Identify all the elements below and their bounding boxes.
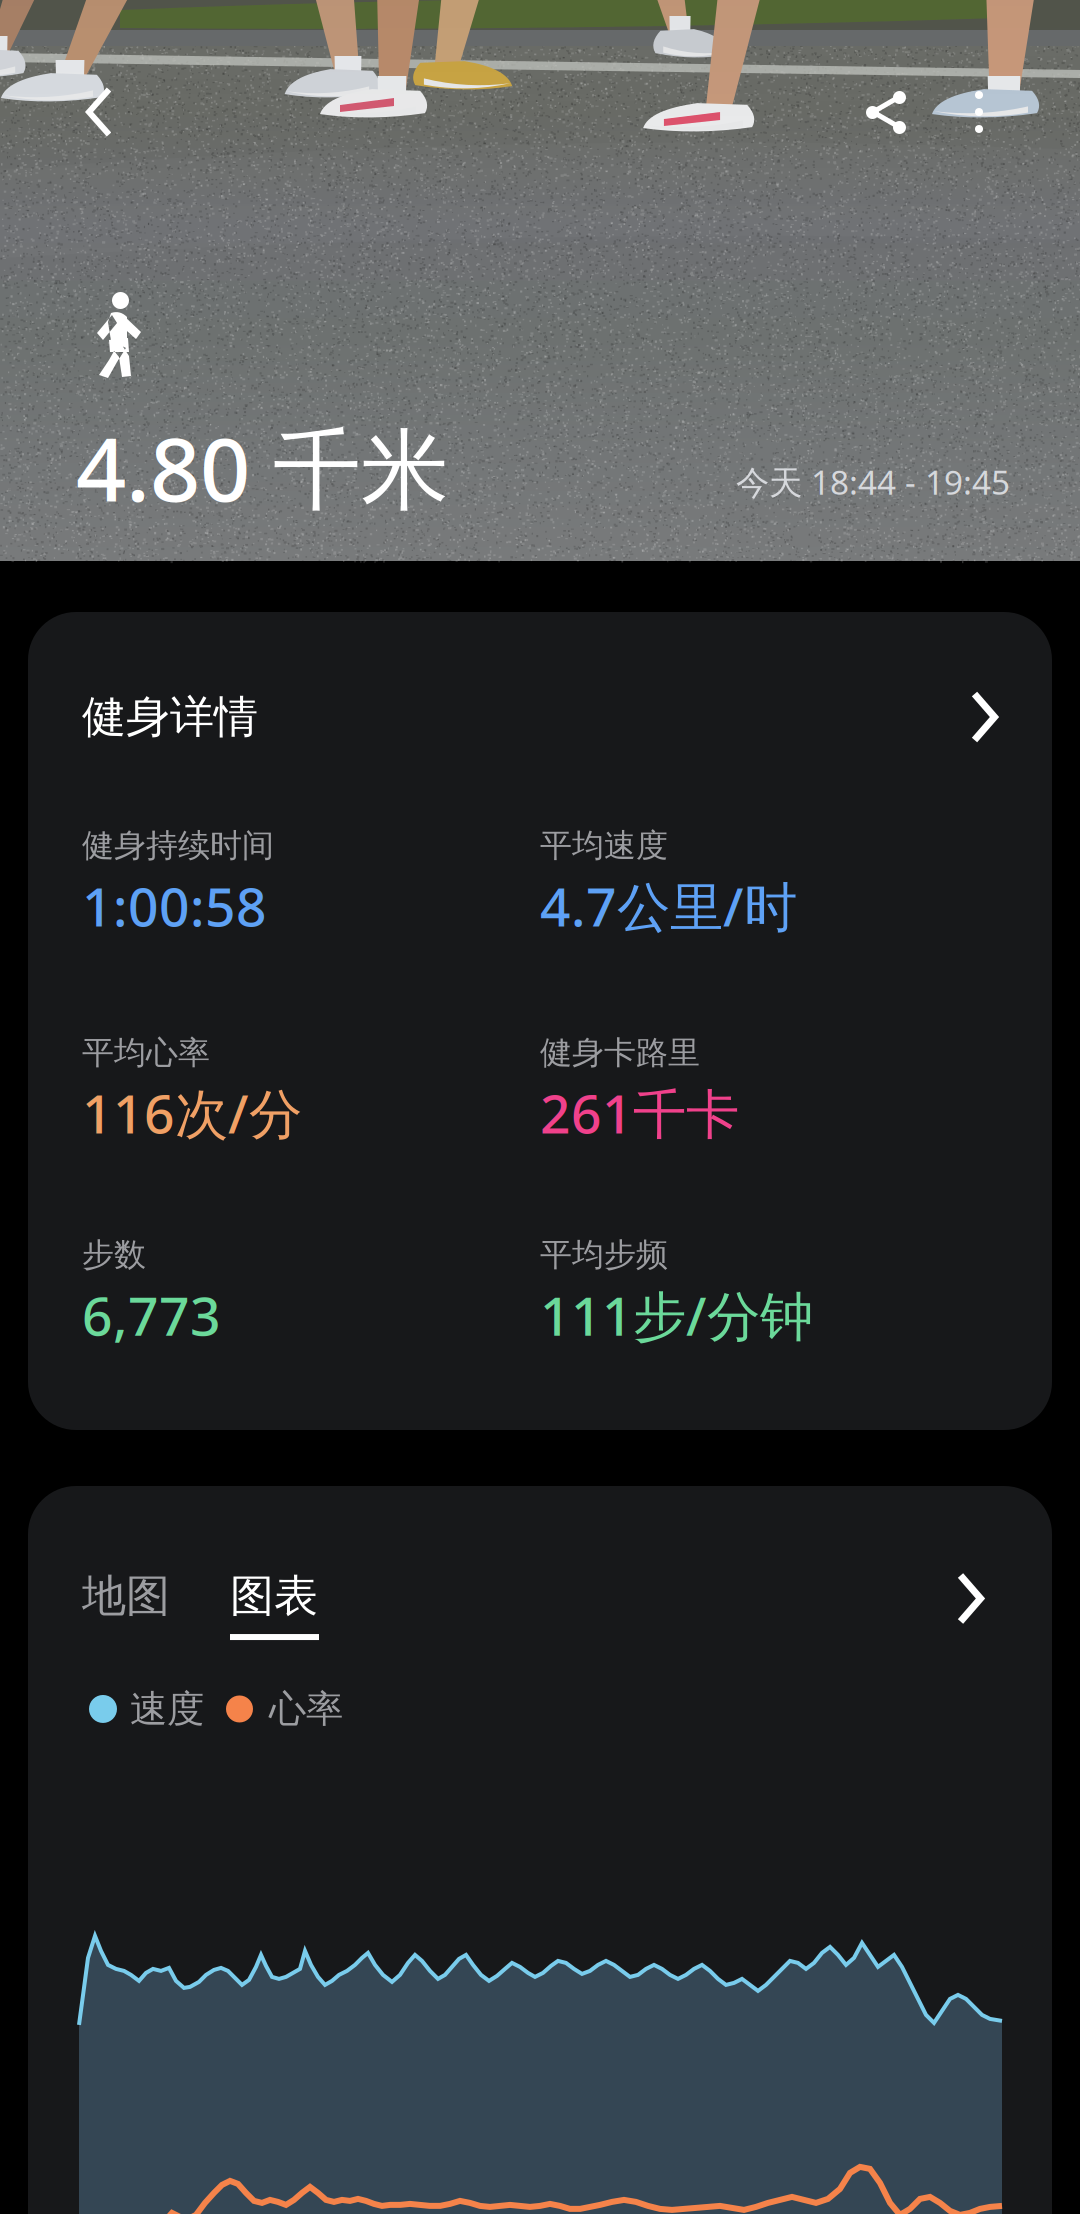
staticText: 4.80 千米	[76, 409, 449, 526]
staticText: 平均步频	[540, 1235, 668, 1275]
staticText: 速度	[130, 1686, 204, 1732]
button[interactable]: 地图	[82, 1569, 170, 1623]
staticText: 平均心率	[82, 1033, 210, 1072]
staticText: 健身详情	[82, 690, 258, 744]
staticText: 平均速度	[540, 826, 668, 865]
staticText: 116次/分	[82, 1077, 302, 1148]
staticText: 4.7公里/时	[540, 870, 797, 941]
staticText: 健身持续时间	[82, 826, 274, 865]
staticText: 111步/分钟	[540, 1280, 813, 1350]
button[interactable]: Back	[52, 65, 146, 159]
staticText: 步数	[82, 1235, 146, 1275]
button[interactable]: 健身详情	[28, 612, 1052, 764]
staticText: 心率	[269, 1686, 343, 1732]
staticText: 1:00:58	[82, 870, 267, 941]
button[interactable]: Share	[839, 65, 933, 159]
button[interactable]: Expand chart	[957, 1569, 984, 1625]
staticText: 图表	[230, 1569, 318, 1623]
button[interactable]: 图表	[230, 1569, 319, 1640]
button[interactable]: More options	[933, 65, 1025, 159]
staticText: 261千卡	[540, 1077, 739, 1148]
staticText: 今天 18:44 - 19:45	[736, 460, 1010, 504]
staticText: 健身卡路里	[540, 1033, 700, 1072]
staticText: 地图	[82, 1569, 170, 1623]
staticText: 6,773	[82, 1280, 221, 1350]
